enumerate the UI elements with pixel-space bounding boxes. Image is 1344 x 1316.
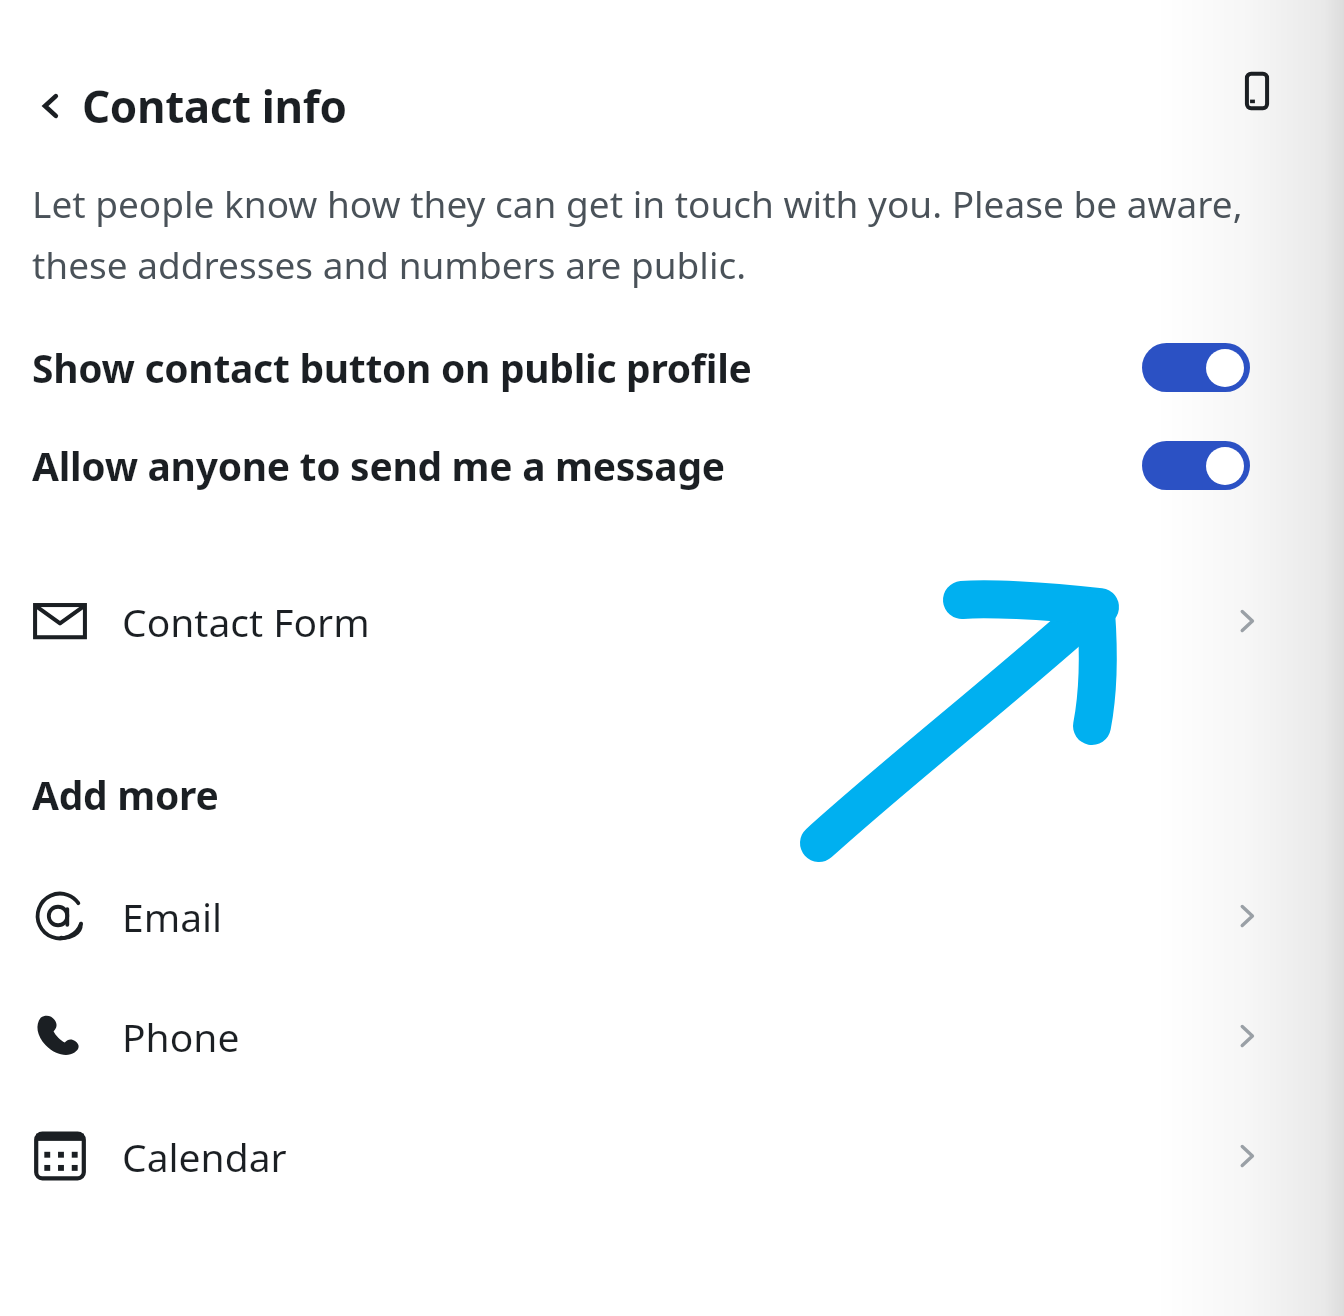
staticText: Let people know how they can get in touc… (32, 178, 1288, 290)
button[interactable]: Email (0, 865, 1344, 967)
button[interactable]: View on device (1228, 62, 1286, 120)
other: Back (36, 91, 66, 121)
button[interactable]: Contact Form (0, 570, 1344, 672)
staticText: Email (122, 890, 223, 943)
button[interactable]: Calendar (0, 1105, 1344, 1207)
staticText: Add more (32, 768, 219, 821)
button[interactable]: Allow anyone to send me a message (0, 426, 1344, 504)
staticText: Phone (122, 1010, 240, 1063)
staticText: Calendar (122, 1130, 287, 1183)
button[interactable]: Back (26, 68, 357, 144)
staticText: Allow anyone to send me a message (32, 439, 725, 492)
button[interactable]: Phone (0, 985, 1344, 1087)
staticText: Show contact button on public profile (32, 341, 752, 394)
button[interactable]: Show contact button on public profile (0, 328, 1344, 406)
staticText: Contact Form (122, 595, 370, 648)
staticText: Contact info (82, 76, 347, 136)
